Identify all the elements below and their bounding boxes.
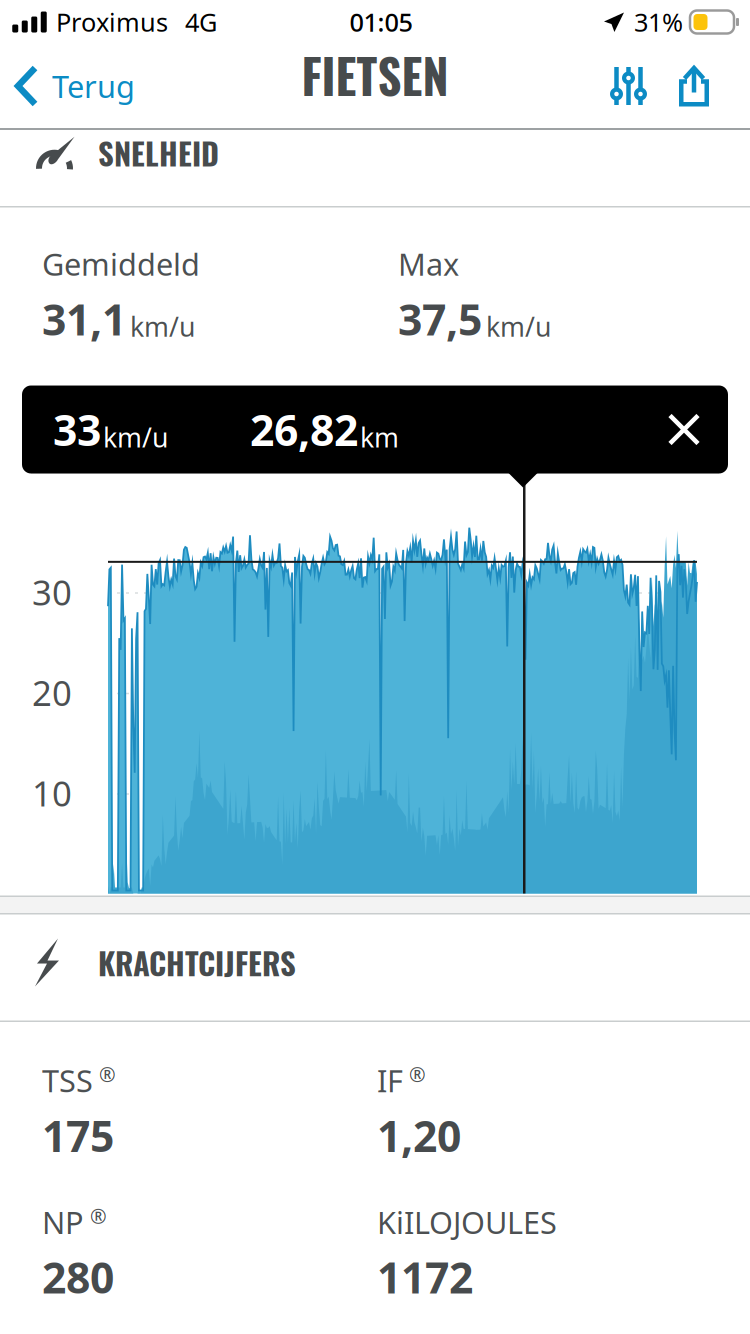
staticText: ®: [90, 1203, 107, 1229]
staticText: KRACHTCIJFERS: [98, 940, 296, 985]
staticText: km/u: [486, 309, 551, 344]
staticText: ®: [409, 1061, 426, 1088]
staticText: KiILOJOULES: [377, 1202, 557, 1242]
staticText: km/u: [130, 309, 195, 344]
staticText: 31%: [634, 5, 683, 39]
button[interactable]: Terug: [0, 44, 147, 128]
button[interactable]: Filter settings: [610, 44, 648, 128]
staticText: SNELHEID: [98, 130, 219, 175]
staticText: 280: [42, 1249, 114, 1305]
staticText: 26,82: [250, 401, 358, 458]
staticText: ®: [99, 1061, 116, 1088]
staticText: Gemiddeld: [42, 243, 200, 284]
staticText: Proximus: [56, 5, 168, 39]
staticText: 1,20: [377, 1107, 461, 1164]
staticText: km/u: [103, 419, 168, 455]
staticText: NP: [42, 1202, 84, 1242]
staticText: 33: [53, 401, 101, 458]
staticText: 01:05: [349, 5, 412, 39]
staticText: 4G: [185, 5, 217, 39]
staticText: FIETSEN: [301, 40, 448, 110]
button[interactable]: Close: [655, 385, 713, 473]
staticText: 20: [32, 669, 72, 715]
staticText: 1172: [377, 1249, 473, 1305]
staticText: Terug: [52, 66, 135, 106]
staticText: 37,5: [398, 290, 482, 347]
staticText: TSS: [42, 1060, 93, 1101]
staticText: 31,1: [42, 290, 126, 347]
staticText: km: [360, 419, 399, 455]
staticText: IF: [377, 1060, 403, 1101]
staticText: 30: [32, 569, 72, 615]
button[interactable]: Share: [679, 44, 709, 128]
staticText: 175: [42, 1107, 114, 1164]
staticText: Max: [398, 243, 459, 284]
staticText: 10: [32, 770, 72, 816]
